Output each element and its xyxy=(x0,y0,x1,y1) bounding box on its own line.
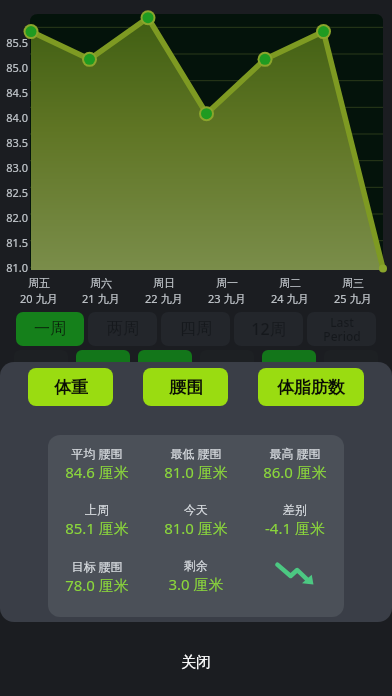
staticText: 21 九月 xyxy=(82,291,120,306)
staticText: 81.0 xyxy=(0,260,28,275)
staticText: 关闭 xyxy=(181,653,211,672)
staticText: 23 九月 xyxy=(208,291,246,306)
staticText: 平均 腰围 xyxy=(71,445,123,461)
staticText: 25 九月 xyxy=(334,291,372,306)
staticText: 一周 xyxy=(34,319,66,339)
button[interactable] xyxy=(138,350,192,374)
staticText: 82.5 xyxy=(0,185,28,200)
staticText: 83.5 xyxy=(0,135,28,150)
staticText: 腰围 xyxy=(169,377,203,398)
staticText: 目标 腰围 xyxy=(71,558,123,574)
button[interactable] xyxy=(262,350,316,374)
button[interactable]: 关闭 xyxy=(0,644,392,680)
staticText: 81.0 厘米 xyxy=(164,462,228,482)
button[interactable] xyxy=(76,350,130,374)
staticText: 周一 xyxy=(216,276,238,290)
button[interactable]: 四周 xyxy=(161,312,230,346)
staticText: 12周 xyxy=(251,318,286,340)
button[interactable]: 体重 xyxy=(28,368,113,406)
button[interactable] xyxy=(324,350,378,374)
button[interactable]: 两周 xyxy=(88,312,157,346)
staticText: 今天 xyxy=(184,502,208,517)
staticText: 四周 xyxy=(180,319,212,339)
staticText: 20 九月 xyxy=(20,291,58,306)
staticText: 剩余 xyxy=(184,558,208,573)
staticText: 周五 xyxy=(28,276,50,290)
button[interactable] xyxy=(200,350,254,374)
staticText: -4.1 厘米 xyxy=(265,518,325,538)
staticText: 周日 xyxy=(153,276,175,290)
staticText: 22 九月 xyxy=(145,291,183,306)
staticText: 78.0 厘米 xyxy=(65,575,129,595)
staticText: 最高 腰围 xyxy=(269,445,321,461)
staticText: 周三 xyxy=(342,276,364,290)
staticText: 周六 xyxy=(90,276,112,290)
button[interactable]: 体脂肪数 xyxy=(258,368,364,406)
staticText: 82.0 xyxy=(0,210,28,225)
staticText: 84.5 xyxy=(0,85,28,100)
staticText: 85.5 xyxy=(0,35,28,50)
button[interactable]: 腰围 xyxy=(143,368,228,406)
button[interactable] xyxy=(14,350,68,374)
button[interactable]: 一周 xyxy=(16,312,84,346)
staticText: 24 九月 xyxy=(271,291,309,306)
staticText: 83.0 xyxy=(0,160,28,175)
staticText: 两周 xyxy=(107,319,139,339)
staticText: 84.6 厘米 xyxy=(65,462,129,482)
staticText: 85.0 xyxy=(0,60,28,75)
staticText: 85.1 厘米 xyxy=(65,518,129,538)
staticText: Last Period xyxy=(323,314,361,345)
staticText: 体重 xyxy=(54,377,88,398)
staticText: 84.0 xyxy=(0,110,28,125)
staticText: 81.5 xyxy=(0,235,28,250)
staticText: 上周 xyxy=(85,502,109,517)
staticText: 3.0 厘米 xyxy=(168,574,224,594)
staticText: 体脂肪数 xyxy=(277,377,345,398)
staticText: 周二 xyxy=(279,276,301,290)
button[interactable]: Last Period xyxy=(307,312,376,346)
staticText: 最低 腰围 xyxy=(170,445,222,461)
staticText: 81.0 厘米 xyxy=(164,518,228,538)
staticText: 86.0 厘米 xyxy=(263,462,327,482)
staticText: 差别 xyxy=(283,502,307,517)
